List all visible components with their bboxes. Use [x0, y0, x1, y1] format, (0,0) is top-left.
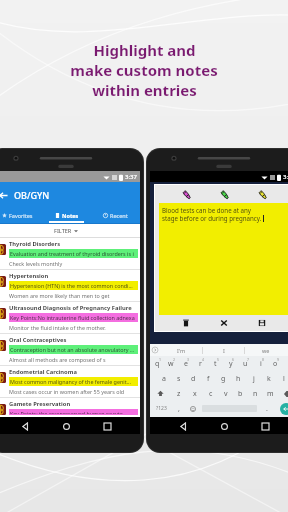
button[interactable]: v [218, 386, 233, 401]
button[interactable]: 5 [208, 356, 223, 371]
button[interactable]: c [203, 386, 218, 401]
button[interactable]: Recent [91, 208, 140, 223]
button[interactable]: , [172, 401, 185, 416]
button[interactable]: Favorites [0, 208, 42, 223]
staticText: c [209, 389, 213, 399]
button[interactable]: Save note [255, 316, 269, 330]
button[interactable]: Yellow highlighter [255, 187, 269, 201]
staticText: z [177, 389, 181, 399]
button[interactable]: z [171, 386, 187, 401]
staticText: m [267, 389, 274, 399]
button[interactable]: ?123 [150, 401, 172, 416]
staticText: 6 [232, 357, 235, 362]
button[interactable]: a [156, 371, 171, 386]
staticText: s [177, 374, 181, 384]
button[interactable]: 2 [164, 356, 178, 371]
staticText: Recent [110, 212, 128, 219]
button[interactable]: Ultrasound Diagnosis of Pregnancy Failur… [0, 302, 140, 333]
button[interactable]: Gamete Preservation [0, 398, 140, 417]
button[interactable]: FILTER [0, 224, 140, 237]
staticText: d [191, 374, 196, 384]
button[interactable]: n [248, 386, 263, 401]
button[interactable]: Close [217, 316, 231, 330]
button[interactable]: x [187, 386, 203, 401]
button[interactable]: Recent apps [257, 418, 273, 434]
button[interactable]: 7 [238, 356, 253, 371]
button[interactable]: b [233, 386, 248, 401]
staticText: Thyroid Disorders [9, 240, 61, 248]
button[interactable]: Delete note [179, 316, 193, 330]
button[interactable]: 4 [193, 356, 208, 371]
button[interactable]: m [263, 386, 278, 401]
staticText: y [229, 359, 233, 369]
button[interactable]: Pink highlighter [179, 187, 193, 201]
staticText: Gamete Preservation [9, 400, 71, 408]
button[interactable]: l [276, 371, 288, 386]
button[interactable]: I'm [160, 344, 202, 356]
staticText: Ultrasound Diagnosis of Pregnancy Failur… [9, 304, 132, 312]
staticText: f [207, 374, 210, 384]
staticText: make custom notes [70, 60, 218, 80]
button[interactable]: we [245, 344, 286, 356]
button[interactable]: Navigate up [0, 182, 140, 208]
staticText: v [224, 389, 228, 399]
staticText: Women are more likely than men to get [9, 292, 110, 299]
staticText: Hypertension (HTN) is the most common co… [10, 282, 133, 289]
button[interactable]: s [171, 371, 186, 386]
staticText: 2 [173, 357, 176, 362]
button[interactable]: Backspace [278, 386, 288, 401]
staticText: within entries [92, 80, 197, 100]
button[interactable]: . [259, 401, 274, 416]
button[interactable]: k [261, 371, 276, 386]
button[interactable]: Oral Contraceptives [0, 334, 140, 365]
staticText: Key Points: the cryopreserved human oocy… [10, 410, 123, 414]
button[interactable]: 3 [178, 356, 193, 371]
staticText: I [223, 347, 225, 354]
staticText: Most cases occur in women after 55 years… [9, 388, 125, 395]
button[interactable]: j [246, 371, 261, 386]
button[interactable]: Back [175, 418, 191, 434]
staticText: Blood tests can be done at any [162, 206, 252, 214]
button[interactable]: Recent apps [99, 418, 115, 434]
button[interactable]: Back [17, 418, 33, 434]
button[interactable]: Shift [150, 386, 171, 401]
button[interactable]: Thyroid Disorders [0, 238, 140, 269]
staticText: Monitor the fluid intake of the mother. [9, 324, 106, 331]
button[interactable]: Home [216, 418, 232, 434]
button[interactable]: Blood tests can be done at any [159, 203, 288, 315]
staticText: j [253, 374, 255, 384]
button[interactable]: 8 [253, 356, 268, 371]
button[interactable]: h [231, 371, 246, 386]
button[interactable]: Hypertension [0, 270, 140, 301]
button[interactable]: d [186, 371, 201, 386]
staticText: n [253, 389, 258, 399]
staticText: 4 [202, 357, 205, 362]
staticText: Evaluation and treatment of thyroid diso… [10, 250, 134, 257]
button[interactable]: Emoji [185, 401, 200, 416]
staticText: OB/GYN [14, 189, 50, 201]
staticText: 9 [277, 357, 280, 362]
button[interactable]: 6 [223, 356, 238, 371]
button[interactable]: 9 [268, 356, 283, 371]
button[interactable]: Notes [42, 208, 91, 223]
button[interactable]: f [201, 371, 216, 386]
staticText: g [221, 374, 226, 384]
button[interactable]: Green highlighter [217, 187, 231, 201]
button[interactable]: Expand toolbar [150, 344, 160, 356]
button[interactable]: Navigate up [0, 182, 14, 208]
staticText: b [238, 389, 243, 399]
button[interactable]: Enter [274, 401, 288, 416]
staticText: q [155, 359, 160, 369]
staticText: Hypertension [9, 272, 49, 280]
staticText: Almost all methods are composed of s [9, 356, 106, 363]
button[interactable]: g [216, 371, 231, 386]
button[interactable]: 1 [150, 356, 164, 371]
button[interactable]: Home [58, 418, 74, 434]
button[interactable]: Endometrial Carcinoma [0, 366, 140, 397]
button[interactable]: I [203, 344, 244, 356]
staticText: I'm [177, 347, 186, 354]
staticText: r [199, 359, 202, 369]
